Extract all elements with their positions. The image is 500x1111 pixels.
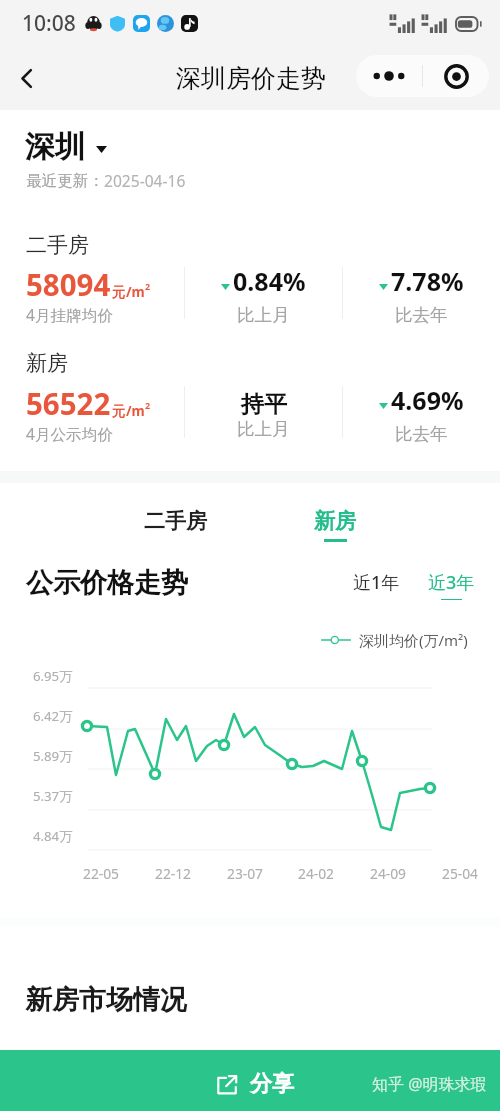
staticText: /m xyxy=(126,402,145,420)
staticText: 近3年 xyxy=(428,570,475,595)
staticText: 5.89万 xyxy=(33,747,73,765)
staticText: 56522 xyxy=(26,383,111,423)
staticText: 元 xyxy=(112,403,126,420)
staticText: 新房市场情况 xyxy=(25,983,187,1017)
staticText: 23-07 xyxy=(227,864,264,883)
button[interactable]: Back xyxy=(5,56,49,100)
staticText: 22-12 xyxy=(155,864,192,883)
staticText: 0.84% xyxy=(233,264,306,298)
staticText: 24-02 xyxy=(298,864,335,883)
staticText: 分享 xyxy=(250,1070,294,1098)
staticText: 深圳房价走势 xyxy=(176,63,326,94)
staticText: 比上月 xyxy=(237,418,290,440)
staticText: 持平 xyxy=(241,390,287,419)
button[interactable]: More options xyxy=(356,55,422,97)
button[interactable]: 近3年 xyxy=(418,566,484,600)
staticText: 58094 xyxy=(26,264,111,304)
staticText: 6.95万 xyxy=(33,667,73,685)
staticText: 二手房 xyxy=(26,232,89,258)
staticText: 新房 xyxy=(26,350,68,376)
staticText: 元 xyxy=(112,284,126,301)
button[interactable]: 分享 xyxy=(0,1050,500,1111)
staticText: 比去年 xyxy=(395,423,448,445)
staticText: 新房 xyxy=(314,508,356,534)
button[interactable]: 二手房 xyxy=(115,502,235,546)
staticText: 10:08 xyxy=(22,9,76,38)
staticText: 公示价格走势 xyxy=(26,566,188,600)
staticText: /m xyxy=(126,283,145,301)
staticText: 2025-04-16 xyxy=(104,170,186,191)
staticText: 比去年 xyxy=(395,304,448,326)
staticText: 4.84万 xyxy=(33,827,73,845)
staticText: 最近更新： xyxy=(26,171,104,191)
staticText: 22-05 xyxy=(83,864,120,883)
staticText: 二手房 xyxy=(144,508,207,534)
staticText: 近1年 xyxy=(353,570,400,595)
staticText: 6.42万 xyxy=(33,707,73,725)
staticText: 4月挂牌均价 xyxy=(26,304,113,325)
staticText: 比上月 xyxy=(237,304,290,326)
staticText: 2 xyxy=(145,280,151,292)
button[interactable]: 新房 xyxy=(275,502,395,546)
staticText: 25-04 xyxy=(442,864,479,883)
button[interactable]: Close mini program xyxy=(423,55,489,97)
staticText: 24-09 xyxy=(370,864,407,883)
staticText: 2 xyxy=(145,399,151,411)
staticText: 7.78% xyxy=(391,264,464,298)
staticText: 4.69% xyxy=(391,383,464,417)
staticText: 深圳均价(万/m²) xyxy=(359,630,468,650)
staticText: 知乎 @明珠求瑕 xyxy=(372,1073,487,1095)
button[interactable]: 近1年 xyxy=(343,566,409,596)
staticText: 5.37万 xyxy=(33,787,73,805)
staticText: 深圳 xyxy=(25,128,85,166)
staticText: 4月公示均价 xyxy=(26,423,113,444)
button[interactable]: 深圳 xyxy=(25,128,107,166)
